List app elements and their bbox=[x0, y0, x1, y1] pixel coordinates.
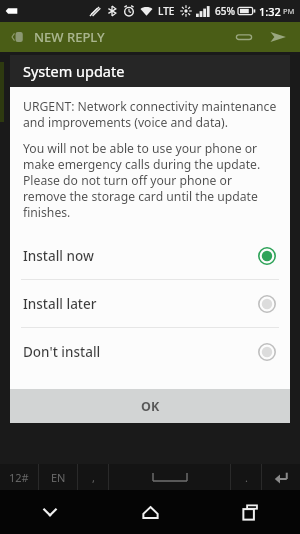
staticText: Install later bbox=[23, 295, 97, 313]
button[interactable]: Back bbox=[4, 24, 30, 50]
button[interactable]: Space bbox=[109, 464, 230, 490]
staticText: System update bbox=[23, 61, 125, 81]
staticText: 65% bbox=[215, 4, 235, 18]
staticText: You will not be able to use your phone o… bbox=[23, 140, 277, 220]
button[interactable]: Hide keyboard bbox=[0, 490, 100, 534]
staticText: URGENT: Network connectivity maintenance… bbox=[23, 98, 277, 130]
button[interactable]: Recent apps bbox=[200, 490, 300, 534]
staticText: 12# bbox=[9, 470, 29, 485]
button[interactable]: Install now bbox=[10, 232, 290, 279]
button[interactable]: Don't install bbox=[10, 328, 290, 375]
staticText: PM bbox=[283, 6, 295, 16]
button[interactable]: Enter bbox=[262, 464, 300, 490]
button[interactable]: Attach bbox=[230, 23, 258, 51]
staticText: 1:32 bbox=[259, 4, 281, 19]
staticText: OK bbox=[141, 398, 160, 415]
staticText: . bbox=[245, 470, 248, 485]
staticText: LTE bbox=[158, 4, 175, 18]
staticText: Install now bbox=[23, 247, 94, 265]
button[interactable]: 12# bbox=[0, 464, 38, 490]
button[interactable]: , bbox=[78, 464, 108, 490]
button[interactable]: OK bbox=[10, 389, 290, 423]
staticText: EN bbox=[51, 470, 66, 485]
button[interactable]: Install later bbox=[10, 280, 290, 327]
staticText: Don't install bbox=[23, 343, 101, 361]
button[interactable]: EN bbox=[39, 464, 77, 490]
button[interactable]: Send bbox=[264, 23, 292, 51]
staticText: , bbox=[92, 470, 95, 485]
button[interactable]: Home bbox=[100, 490, 200, 534]
staticText: NEW REPLY bbox=[34, 28, 105, 46]
